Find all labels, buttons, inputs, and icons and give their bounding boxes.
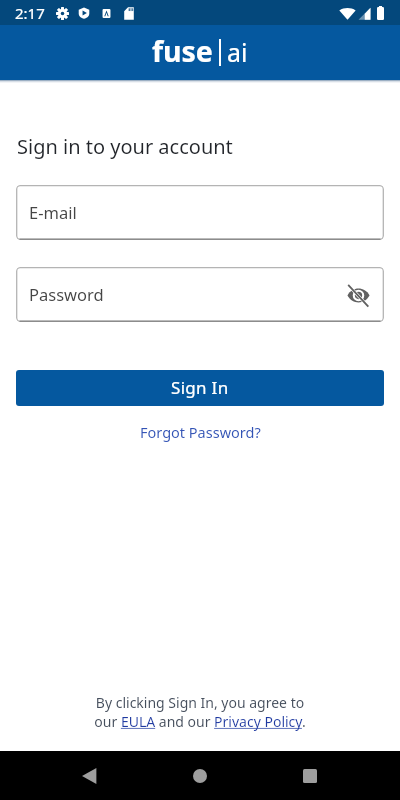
button[interactable]: Back: [64, 751, 114, 800]
staticText: Sign In: [171, 376, 229, 399]
staticText: Password: [29, 283, 104, 305]
button[interactable]: Password: [16, 267, 384, 322]
staticText: 2:17: [15, 3, 45, 23]
button[interactable]: Home: [175, 751, 225, 800]
staticText: Forgot Password?: [140, 422, 261, 442]
staticText: By clicking Sign In, you agree to our EU…: [94, 693, 306, 731]
button[interactable]: Recents: [285, 751, 335, 800]
staticText: ai: [227, 35, 248, 69]
button[interactable]: E-mail: [16, 185, 384, 240]
staticText: Sign in to your account: [17, 133, 233, 160]
staticText: fuse: [152, 32, 213, 71]
staticText: E-mail: [29, 201, 77, 223]
button[interactable]: Forgot Password?: [130, 419, 271, 445]
button[interactable]: Show password: [345, 282, 371, 308]
button[interactable]: Sign In: [16, 370, 384, 406]
